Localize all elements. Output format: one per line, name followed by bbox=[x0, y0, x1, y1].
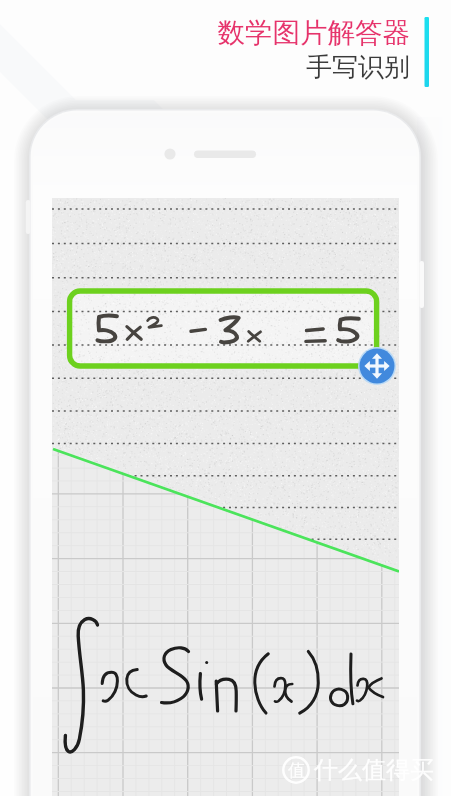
staticText: 什么值得买 bbox=[314, 755, 434, 785]
staticText: 手写识别 bbox=[306, 51, 410, 84]
staticText: 数学图片解答器 bbox=[217, 16, 410, 51]
staticText: 值 bbox=[288, 760, 305, 781]
button[interactable]: Handwriting canvas bbox=[52, 580, 399, 780]
button[interactable]: Selected equation 5x² − 3x = 5 bbox=[68, 288, 377, 368]
button[interactable]: Move selection bbox=[359, 348, 395, 384]
